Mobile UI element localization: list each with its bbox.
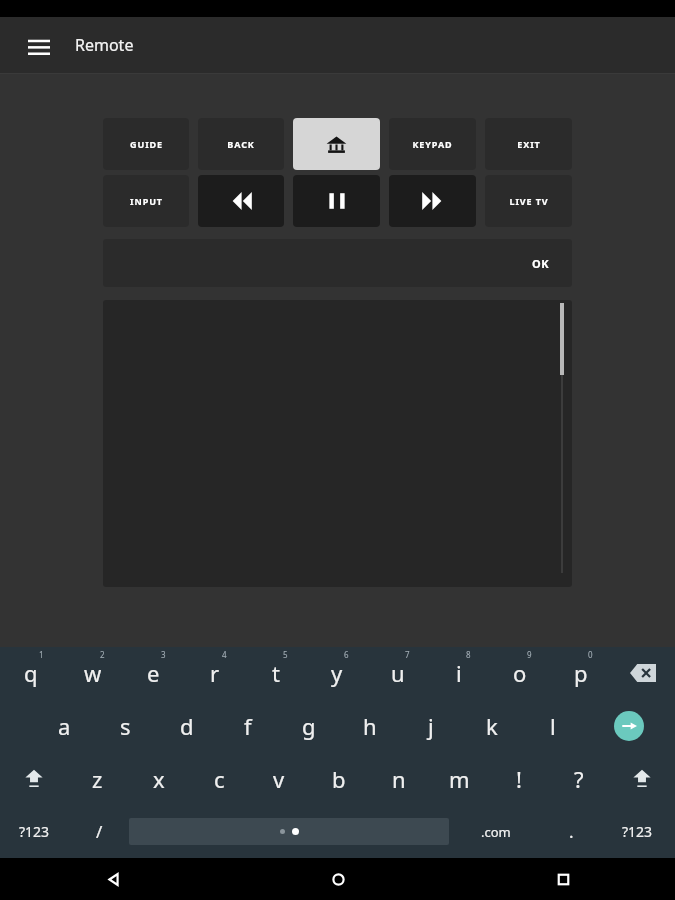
- staticText: g: [302, 711, 316, 741]
- button[interactable]: LIVE TV: [485, 175, 572, 227]
- staticText: GUIDE: [130, 138, 163, 150]
- staticText: 8: [466, 649, 471, 660]
- button[interactable]: j: [400, 699, 461, 752]
- staticText: r: [210, 658, 220, 688]
- staticText: k: [486, 711, 498, 741]
- staticText: LIVE TV: [509, 195, 549, 207]
- button[interactable]: BACK: [198, 118, 284, 170]
- button[interactable]: d: [156, 699, 217, 752]
- staticText: f: [244, 711, 252, 741]
- staticText: s: [120, 711, 131, 741]
- button[interactable]: Enter: [583, 699, 675, 752]
- button[interactable]: n: [369, 752, 429, 805]
- button[interactable]: Shift: [609, 752, 675, 805]
- button[interactable]: INPUT: [103, 175, 189, 227]
- button[interactable]: Fast forward: [389, 175, 476, 227]
- button[interactable]: x: [128, 752, 189, 805]
- staticText: 5: [283, 649, 288, 660]
- staticText: p: [574, 658, 588, 688]
- staticText: Remote: [75, 34, 134, 56]
- staticText: 1: [39, 649, 44, 660]
- button[interactable]: Back: [78, 858, 148, 900]
- staticText: KEYPAD: [412, 138, 453, 150]
- button[interactable]: b: [309, 752, 369, 805]
- button[interactable]: t: [245, 647, 306, 699]
- button[interactable]: Open navigation drawer: [22, 28, 56, 62]
- staticText: .: [569, 820, 574, 843]
- staticText: n: [392, 764, 406, 794]
- button[interactable]: o: [489, 647, 550, 699]
- staticText: ?: [574, 764, 584, 794]
- button[interactable]: .com: [449, 805, 543, 858]
- staticText: i: [456, 658, 462, 688]
- button[interactable]: i: [428, 647, 489, 699]
- button[interactable]: .: [543, 805, 600, 858]
- staticText: 4: [222, 649, 227, 660]
- staticText: w: [84, 658, 102, 688]
- button[interactable]: k: [461, 699, 522, 752]
- button[interactable]: KEYPAD: [389, 118, 476, 170]
- staticText: /: [96, 820, 103, 843]
- button[interactable]: q: [0, 647, 62, 699]
- button[interactable]: c: [189, 752, 249, 805]
- staticText: e: [147, 658, 160, 688]
- button[interactable]: l: [522, 699, 583, 752]
- button[interactable]: OK: [103, 239, 572, 287]
- button[interactable]: Rewind: [198, 175, 284, 227]
- button[interactable]: r: [184, 647, 245, 699]
- staticText: z: [92, 764, 103, 794]
- staticText: c: [214, 764, 225, 794]
- staticText: b: [332, 764, 346, 794]
- staticText: ?123: [622, 822, 653, 841]
- staticText: 0: [588, 649, 593, 660]
- staticText: d: [180, 711, 194, 741]
- button[interactable]: a: [34, 699, 95, 752]
- button[interactable]: Home: [293, 118, 380, 170]
- staticText: OK: [532, 256, 550, 271]
- button[interactable]: y: [306, 647, 367, 699]
- button[interactable]: Pause: [293, 175, 380, 227]
- button[interactable]: Recent apps: [528, 858, 598, 900]
- button[interactable]: [103, 300, 572, 587]
- staticText: 6: [344, 649, 349, 660]
- button[interactable]: Home: [303, 858, 373, 900]
- staticText: o: [513, 658, 527, 688]
- button[interactable]: /: [69, 805, 129, 858]
- button[interactable]: w: [62, 647, 123, 699]
- button[interactable]: e: [123, 647, 184, 699]
- staticText: j: [428, 711, 434, 741]
- button[interactable]: p: [550, 647, 611, 699]
- button[interactable]: EXIT: [485, 118, 572, 170]
- button[interactable]: v: [249, 752, 309, 805]
- button[interactable]: GUIDE: [103, 118, 189, 170]
- button[interactable]: m: [429, 752, 489, 805]
- staticText: q: [24, 658, 38, 688]
- button[interactable]: h: [339, 699, 400, 752]
- button[interactable]: z: [67, 752, 128, 805]
- staticText: 2: [100, 649, 105, 660]
- staticText: a: [58, 711, 71, 741]
- staticText: !: [516, 764, 522, 794]
- staticText: 7: [405, 649, 410, 660]
- staticText: 9: [527, 649, 532, 660]
- button[interactable]: s: [95, 699, 156, 752]
- staticText: v: [273, 764, 285, 794]
- button[interactable]: u: [367, 647, 428, 699]
- button[interactable]: ?123: [600, 805, 675, 858]
- staticText: h: [363, 711, 377, 741]
- button[interactable]: g: [278, 699, 339, 752]
- button[interactable]: Shift: [0, 752, 67, 805]
- button[interactable]: ?: [549, 752, 609, 805]
- button[interactable]: ?123: [0, 805, 69, 858]
- staticText: INPUT: [130, 195, 163, 207]
- staticText: x: [153, 764, 165, 794]
- staticText: m: [449, 764, 470, 794]
- staticText: l: [550, 711, 556, 741]
- button[interactable]: Backspace: [611, 647, 675, 699]
- button[interactable]: Space: [129, 818, 449, 845]
- button[interactable]: !: [489, 752, 549, 805]
- staticText: ?123: [19, 822, 50, 841]
- staticText: BACK: [227, 138, 255, 150]
- button[interactable]: f: [217, 699, 278, 752]
- staticText: u: [391, 658, 405, 688]
